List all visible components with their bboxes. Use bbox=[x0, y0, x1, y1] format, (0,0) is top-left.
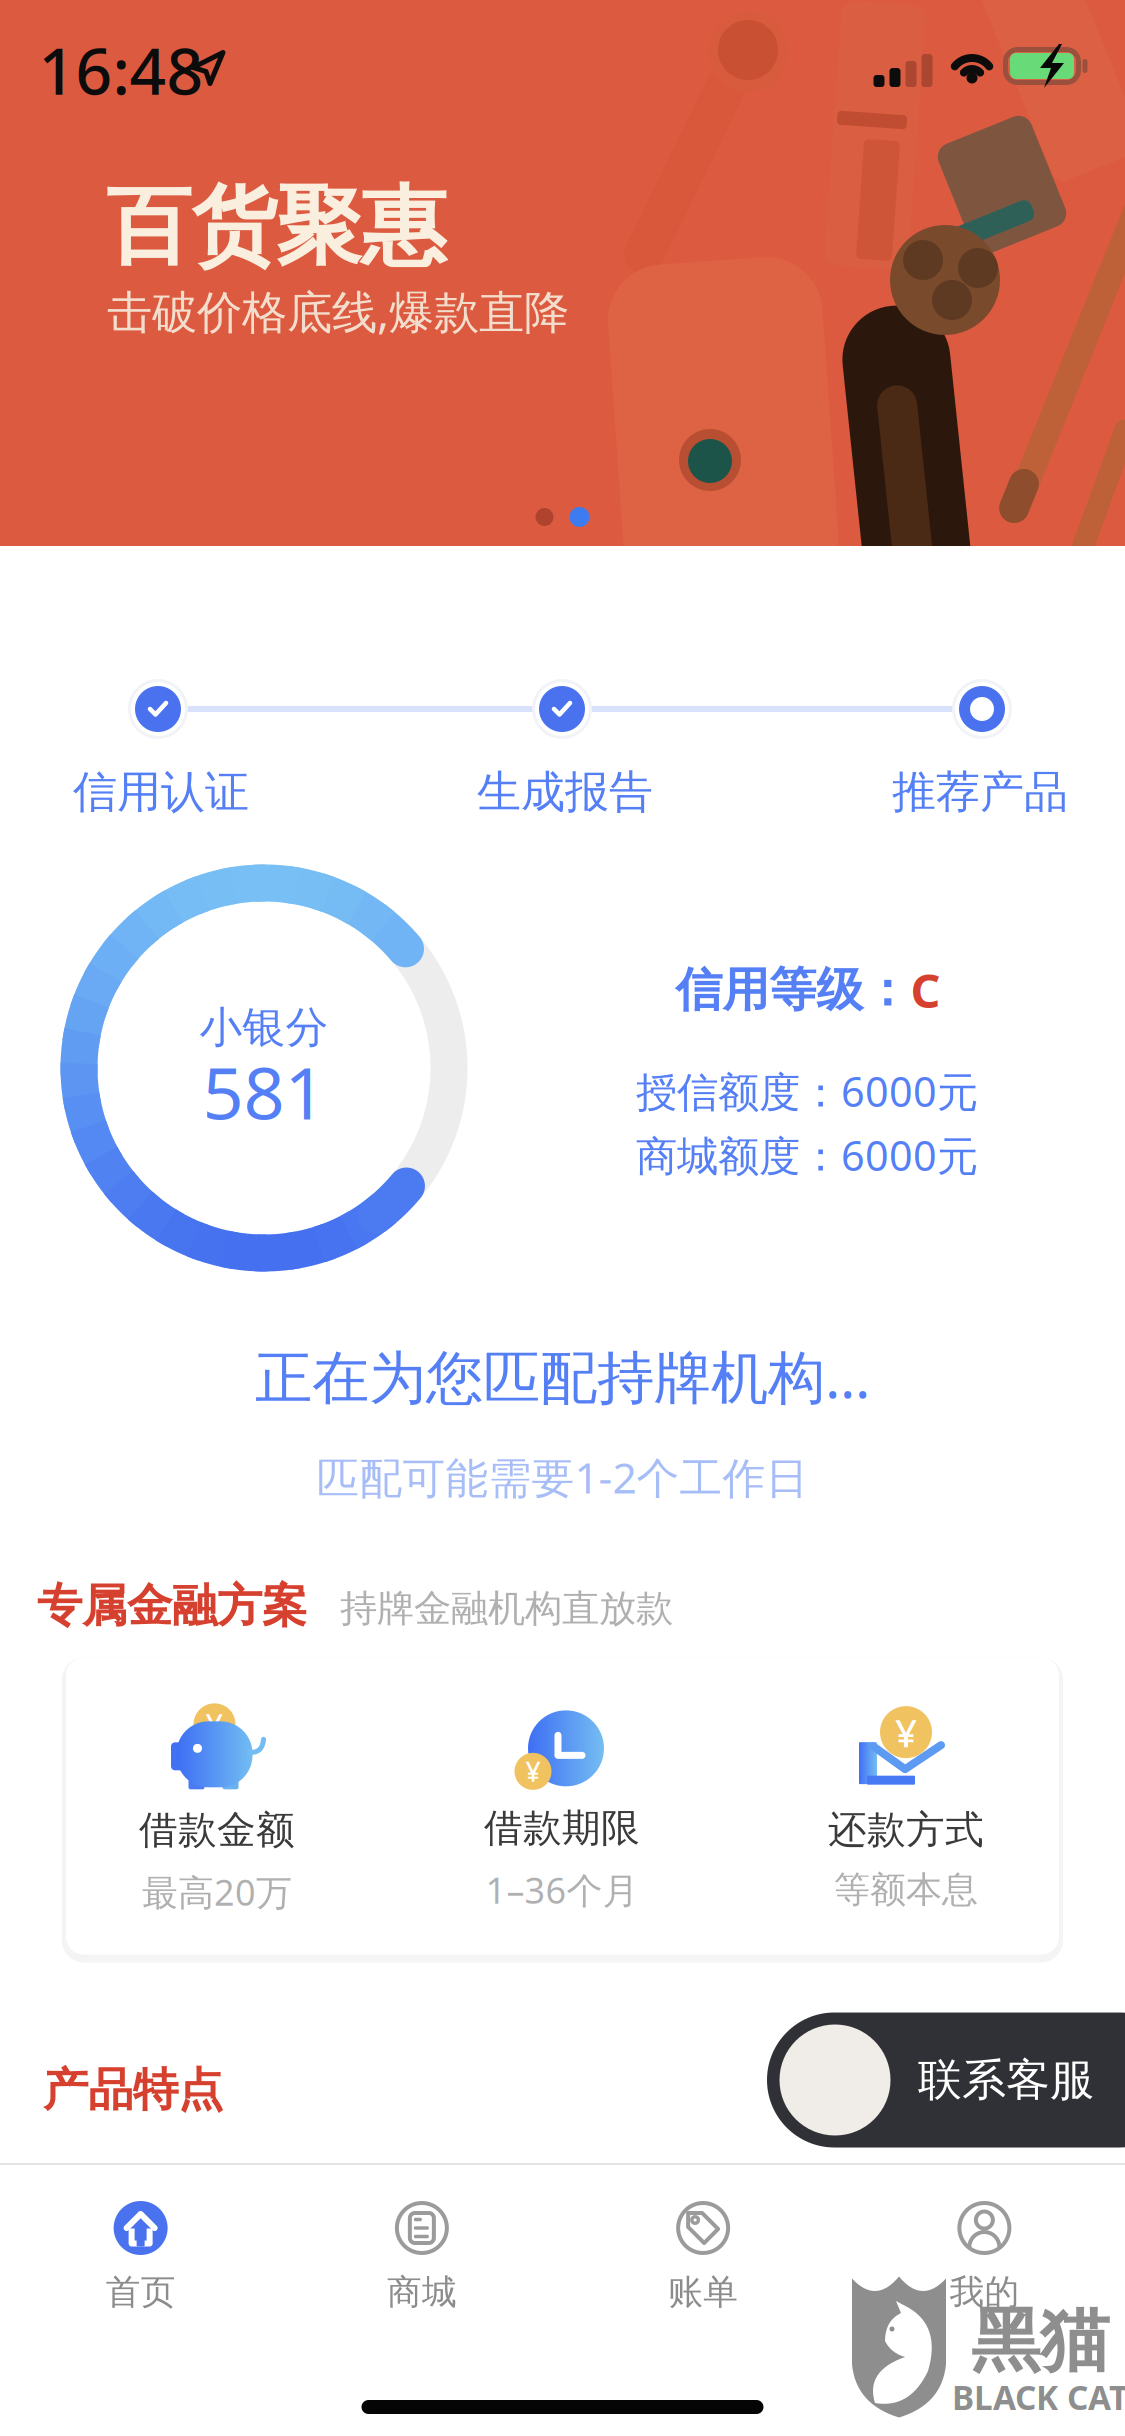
staticText: ¥ bbox=[205, 1704, 223, 1745]
staticText: 小银分 bbox=[199, 1001, 328, 1054]
staticText: 首页 bbox=[106, 2271, 176, 2314]
staticText: 信用等级： bbox=[675, 961, 910, 1019]
staticText: 授信额度：6000元 bbox=[636, 1064, 978, 1118]
staticText: ¥ bbox=[895, 1706, 917, 1758]
staticText: 1–36个月 bbox=[485, 1866, 638, 1914]
staticText: 生成报告 bbox=[477, 765, 653, 819]
button[interactable]: 账单 bbox=[562, 2165, 844, 2336]
staticText: 581 bbox=[202, 1044, 325, 1139]
staticText: 最高20万 bbox=[142, 1868, 292, 1916]
staticText: 推荐产品 bbox=[892, 765, 1068, 819]
button[interactable]: 我的 bbox=[844, 2165, 1125, 2336]
staticText: ¥ bbox=[525, 1754, 540, 1789]
staticText: 账单 bbox=[668, 2271, 738, 2314]
staticText: 击破价格底线,爆款直降 bbox=[107, 281, 569, 341]
staticText: 产品特点 bbox=[43, 2062, 223, 2118]
staticText: 持牌金融机构直放款 bbox=[340, 1586, 673, 1632]
staticText: C bbox=[910, 959, 940, 1021]
staticText: 商城额度：6000元 bbox=[636, 1128, 978, 1182]
staticText: 专属金融方案 bbox=[37, 1578, 307, 1634]
button[interactable]: 首页 bbox=[0, 2165, 281, 2336]
staticText: 商城 bbox=[387, 2271, 457, 2314]
staticText: 百货聚惠 bbox=[106, 175, 446, 279]
staticText: 联系客服 bbox=[918, 2053, 1094, 2107]
button[interactable]: 联系客服 bbox=[767, 2012, 1125, 2147]
staticText: 还款方式 bbox=[828, 1806, 984, 1854]
staticText: BLACK CAT bbox=[952, 2375, 1125, 2419]
staticText: 等额本息 bbox=[834, 1868, 978, 1912]
staticText: 匹配可能需要1-2个工作日 bbox=[316, 1449, 808, 1505]
staticText: 我的 bbox=[949, 2271, 1019, 2314]
staticText: 黑猫 bbox=[971, 2298, 1109, 2384]
staticText: 信用认证 bbox=[73, 765, 249, 819]
staticText: 正在为您匹配持牌机构... bbox=[255, 1338, 870, 1414]
staticText: 借款期限 bbox=[484, 1804, 640, 1852]
staticText: 借款金额 bbox=[139, 1806, 295, 1854]
staticText: 16:48 bbox=[38, 27, 203, 112]
button[interactable]: 商城 bbox=[281, 2165, 562, 2336]
